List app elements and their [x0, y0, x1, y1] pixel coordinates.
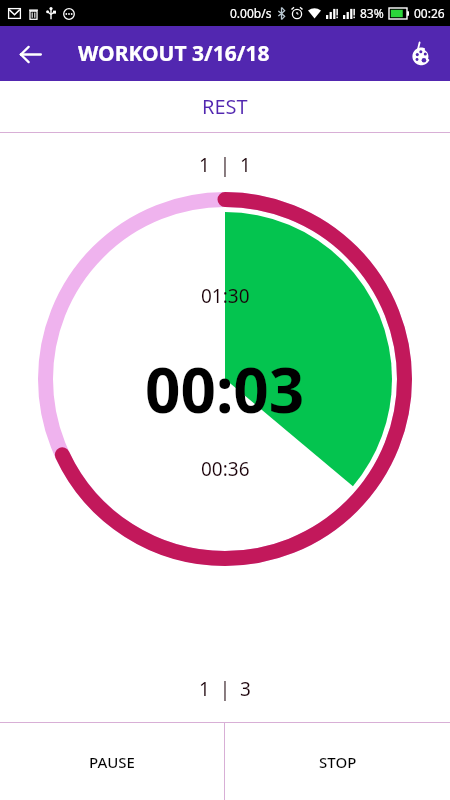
staticText: 00:36 [201, 456, 250, 482]
staticText: 00:03 [145, 347, 305, 431]
button[interactable]: Theme colors [400, 32, 444, 76]
button[interactable]: 01:30 [38, 192, 412, 566]
staticText: WORKOUT 3/16/18 [78, 39, 270, 68]
staticText: REST [202, 93, 248, 120]
staticText: STOP [319, 752, 357, 772]
button[interactable]: STOP [225, 723, 450, 800]
staticText: 1 | 1 [199, 152, 251, 178]
staticText: 0.00b/s [230, 5, 272, 21]
staticText: PAUSE [89, 752, 135, 772]
button[interactable]: PAUSE [0, 723, 224, 800]
staticText: 00:26 [414, 5, 445, 21]
staticText: 1 | 3 [199, 676, 251, 702]
staticText: 83% [360, 5, 384, 21]
button[interactable]: Back [8, 32, 52, 76]
staticText: 01:30 [201, 283, 250, 309]
button[interactable]: REST [0, 81, 450, 132]
